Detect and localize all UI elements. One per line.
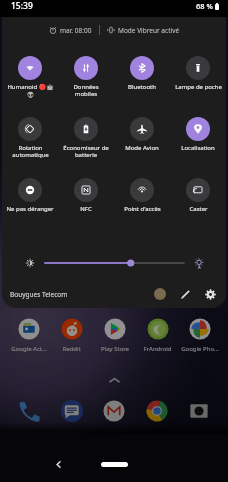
button[interactable]: Humanoid 🔴🤖 👽: [2, 56, 58, 98]
other: All apps: [109, 377, 120, 383]
staticText: 15:39: [11, 0, 33, 12]
button[interactable]: Back: [48, 454, 68, 474]
staticText: FrAndroid: [143, 345, 172, 353]
staticText: Ne pas déranger: [6, 205, 54, 213]
button[interactable]: Ne pas déranger: [2, 178, 58, 213]
staticText: Google Act…: [11, 345, 47, 353]
button[interactable]: Rotation automatique: [2, 117, 58, 159]
button[interactable]: Caster: [170, 178, 226, 213]
button[interactable]: Auto brightness: [193, 257, 205, 269]
button[interactable]: Messages: [60, 399, 84, 423]
staticText: mar. 08:00: [60, 26, 92, 35]
other: Brightness: [24, 257, 36, 269]
button[interactable]: Localisation: [170, 117, 226, 152]
button[interactable]: Reddit: [50, 317, 93, 353]
staticText: Mode Vibreur activé: [118, 26, 180, 35]
button[interactable]: Chrome: [145, 399, 169, 423]
button[interactable]: Lampe de poche: [170, 56, 226, 91]
staticText: 68 %: [196, 1, 213, 11]
button[interactable]: Google Act…: [7, 317, 50, 353]
button[interactable]: Home: [94, 454, 134, 474]
staticText: Économiseur de batterie: [63, 144, 109, 159]
button[interactable]: Google Pho…: [179, 317, 221, 353]
button[interactable]: NFC: [58, 178, 114, 213]
button[interactable]: Phone: [17, 399, 41, 423]
button[interactable]: Settings: [205, 289, 216, 300]
button[interactable]: Camera: [187, 399, 211, 423]
staticText: Bouygues Telecom: [10, 290, 68, 299]
staticText: Lampe de poche: [175, 83, 222, 91]
staticText: Play Store: [101, 345, 129, 353]
staticText: Bluetooth: [128, 83, 156, 91]
button[interactable]: Gmail: [102, 399, 126, 423]
button[interactable]: Économiseur de batterie: [58, 117, 114, 159]
staticText: Point d'accès: [124, 205, 161, 213]
button[interactable]: User: [154, 288, 166, 300]
staticText: NFC: [80, 205, 92, 213]
button[interactable]: FrAndroid: [136, 317, 179, 353]
button[interactable]: Play Store: [93, 317, 136, 353]
button[interactable]: [44, 257, 185, 269]
button[interactable]: Edit: [180, 289, 191, 300]
staticText: Humanoid 🔴🤖 👽: [7, 83, 54, 98]
staticText: Localisation: [181, 144, 215, 152]
button[interactable]: Mode Avion: [114, 117, 170, 152]
staticText: Rotation automatique: [12, 144, 49, 159]
staticText: Google Pho…: [181, 345, 219, 353]
button[interactable]: Données mobiles: [58, 56, 114, 98]
staticText: Caster: [189, 205, 208, 213]
staticText: Données mobiles: [73, 83, 99, 98]
button[interactable]: Point d'accès: [114, 178, 170, 213]
button[interactable]: Bluetooth: [114, 56, 170, 91]
staticText: Reddit: [62, 345, 81, 353]
staticText: Mode Avion: [125, 144, 159, 152]
